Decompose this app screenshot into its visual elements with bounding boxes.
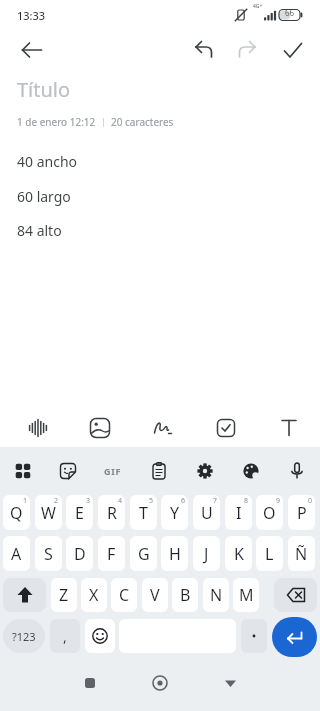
button[interactable] [136,447,182,495]
button[interactable]: L [256,536,283,571]
button[interactable] [186,32,222,68]
button[interactable]: X [81,578,107,612]
button[interactable] [75,668,105,698]
button[interactable]: B [172,578,198,612]
button[interactable]: I [225,495,252,530]
button[interactable] [274,447,320,495]
button[interactable]: ?123 [3,619,45,653]
button[interactable]: Q [3,495,30,530]
button[interactable]: E [66,495,93,530]
button[interactable] [274,578,317,612]
staticText: Y [170,502,180,524]
button[interactable] [0,447,45,495]
button[interactable] [228,447,274,495]
staticText: W [41,502,56,524]
staticText: F [107,543,116,565]
staticText: X [89,584,99,606]
staticText: D [74,543,86,565]
staticText: ?123 [12,629,36,644]
button[interactable] [241,619,267,653]
button[interactable]: F [98,536,125,571]
button[interactable]: Ñ [288,536,315,571]
staticText: I [236,502,242,524]
staticText: 5 [149,496,154,506]
button[interactable]: W [35,495,62,530]
staticText: 9 [276,496,281,506]
staticText: N [210,584,223,606]
staticText: , [63,627,67,646]
button[interactable] [131,408,194,447]
staticText: O [263,502,276,524]
button[interactable]: M [233,578,259,612]
button[interactable] [275,32,311,68]
button[interactable] [215,668,245,698]
button[interactable] [85,619,115,653]
staticText: V [150,584,160,606]
button[interactable]: N [203,578,229,612]
button[interactable] [182,447,228,495]
button[interactable]: H [161,536,188,571]
staticText: 66 [285,7,295,18]
staticText: M [239,584,254,606]
staticText: 1 [23,496,28,506]
button[interactable]: GIF [90,447,136,495]
button[interactable]: , [50,619,80,653]
staticText: B [180,584,191,606]
button[interactable]: S [35,536,62,571]
button[interactable]: Y [161,495,188,530]
button[interactable]: A [3,536,30,571]
staticText: 3 [86,496,91,506]
staticText: R [107,502,117,524]
button[interactable] [69,408,131,447]
staticText: 13:33 [17,8,46,23]
staticText: 4 [118,496,123,506]
staticText: U [201,502,213,524]
button[interactable]: G [130,536,157,571]
button[interactable]: U [193,495,220,530]
staticText: J [204,543,209,565]
staticText: 40 ancho [17,152,78,171]
button[interactable] [145,668,175,698]
button[interactable] [272,617,317,657]
button[interactable]: C [111,578,137,612]
staticText: 8 [244,496,249,506]
staticText: Q [10,502,23,524]
button[interactable]: K [225,536,252,571]
staticText: 7 [213,496,218,506]
staticText: 60 largo [17,187,71,206]
staticText: T [139,502,148,524]
button[interactable]: J [193,536,220,571]
staticText: 20 caracteres [111,115,174,129]
button[interactable]: O [256,495,283,530]
button[interactable]: V [142,578,168,612]
staticText: S [44,543,53,565]
staticText: 2 [54,496,59,506]
button[interactable]: D [66,536,93,571]
staticText: 4G+ [253,3,263,10]
button[interactable] [12,30,52,70]
staticText: H [169,543,181,565]
button[interactable]: Z [51,578,77,612]
button[interactable] [229,32,265,68]
staticText: G [138,543,150,565]
button[interactable]: T [130,495,157,530]
staticText: 1 de enero 12:12 [17,115,96,129]
staticText: Z [59,584,69,606]
staticText: GIF [104,465,122,477]
button[interactable] [7,408,69,447]
staticText: Título [17,76,71,103]
button[interactable] [257,408,320,447]
staticText: 6 [181,496,186,506]
button[interactable]: P [288,495,315,530]
staticText: K [234,543,244,565]
staticText: C [119,584,130,606]
button[interactable]: R [98,495,125,530]
staticText: Ñ [295,543,308,565]
button[interactable] [45,447,90,495]
staticText: 0 [308,496,313,506]
button[interactable] [3,578,46,612]
button[interactable] [194,408,257,447]
staticText: E [75,502,84,524]
staticText: 84 alto [17,221,62,240]
